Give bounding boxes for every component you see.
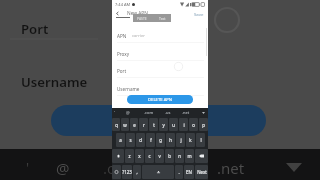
button[interactable]: r — [139, 118, 148, 131]
staticText: Port — [21, 20, 49, 38]
staticText: Text — [159, 16, 166, 21]
staticText: j — [180, 137, 182, 143]
button[interactable]: u — [169, 118, 178, 131]
staticText: carrier — [132, 33, 145, 39]
staticText: k — [189, 137, 192, 143]
button[interactable]: t — [149, 118, 158, 131]
staticText: , — [136, 169, 138, 175]
staticText: Username — [117, 86, 140, 92]
staticText: q — [115, 122, 118, 128]
button[interactable]: Next — [195, 165, 208, 179]
staticText: i — [183, 122, 185, 128]
button[interactable]: Emoji — [112, 165, 121, 179]
button[interactable]: EN — [184, 165, 194, 179]
staticText: Proxy — [117, 51, 130, 57]
staticText: d — [139, 137, 142, 143]
staticText: a — [119, 137, 122, 143]
staticText: ' — [114, 110, 115, 115]
staticText: h — [169, 137, 172, 143]
button[interactable]: c — [145, 149, 154, 163]
button[interactable]: APN — [112, 28, 208, 46]
staticText: PASTE — [137, 16, 147, 21]
button[interactable]: a — [116, 133, 125, 147]
button[interactable]: m — [185, 149, 194, 163]
button[interactable]: d — [136, 133, 145, 147]
staticText: EN — [186, 169, 192, 175]
staticText: p — [202, 122, 205, 128]
button[interactable]: h — [166, 133, 175, 147]
button[interactable]: f — [146, 133, 155, 147]
staticText: y — [162, 122, 165, 128]
button[interactable]: Username — [112, 81, 208, 99]
button[interactable]: Shift — [112, 149, 124, 163]
staticText: Username — [21, 73, 88, 91]
button[interactable]: . — [175, 165, 183, 179]
button[interactable]: Proxy — [112, 46, 208, 64]
staticText: @ — [56, 158, 70, 178]
staticText: .com — [144, 110, 154, 115]
staticText: t — [153, 122, 155, 128]
button[interactable]: Backspace — [195, 149, 208, 163]
staticText: @ — [126, 110, 130, 115]
button[interactable]: v — [155, 149, 164, 163]
staticText: g — [159, 137, 162, 143]
button[interactable]: p — [199, 118, 208, 131]
staticText: l — [200, 137, 202, 143]
button[interactable]: z — [125, 149, 134, 163]
staticText: s — [129, 137, 132, 143]
staticText: .net — [182, 110, 190, 115]
button[interactable]: ?123 — [122, 165, 132, 179]
staticText: DELETE APN — [148, 97, 173, 103]
staticText: e — [133, 122, 136, 128]
staticText: .us — [165, 110, 171, 115]
staticText: Next — [197, 169, 207, 175]
button[interactable]: i — [179, 118, 188, 131]
staticText: Save — [194, 11, 204, 17]
staticText: n — [178, 153, 181, 159]
staticText: w — [123, 122, 127, 128]
button[interactable]: Space — [142, 165, 174, 179]
staticText: ' — [26, 158, 30, 177]
staticText: c — [148, 153, 151, 159]
button[interactable]: , — [133, 165, 141, 179]
button[interactable]: Back — [114, 10, 121, 17]
button[interactable]: x — [135, 149, 144, 163]
staticText: f — [150, 137, 152, 143]
button[interactable]: q — [112, 118, 120, 131]
button[interactable]: Port — [112, 63, 208, 81]
staticText: . — [178, 169, 180, 175]
staticText: .net — [217, 158, 245, 178]
staticText: m — [187, 153, 192, 159]
button[interactable]: o — [189, 118, 198, 131]
button[interactable]: Save — [194, 11, 204, 17]
staticText: APN — [117, 33, 127, 39]
button[interactable]: y — [159, 118, 168, 131]
staticText: New APN — [127, 10, 148, 17]
button[interactable]: l — [196, 133, 205, 147]
button[interactable]: n — [175, 149, 184, 163]
staticText: u — [172, 122, 175, 128]
button[interactable]: DELETE APN — [127, 95, 193, 104]
staticText: Port — [117, 68, 127, 74]
button[interactable]: e — [130, 118, 138, 131]
staticText: 7:44 AM — [115, 2, 131, 7]
staticText: o — [192, 122, 195, 128]
staticText: z — [128, 153, 131, 159]
button[interactable]: j — [176, 133, 185, 147]
staticText: .c — [103, 158, 115, 178]
staticText: r — [143, 122, 145, 128]
button[interactable]: w — [121, 118, 129, 131]
staticText: b — [168, 153, 171, 159]
button[interactable]: s — [126, 133, 135, 147]
button[interactable]: b — [165, 149, 174, 163]
staticText: ?123 — [122, 169, 132, 175]
button[interactable]: k — [186, 133, 195, 147]
staticText: x — [138, 153, 141, 159]
button[interactable]: g — [156, 133, 165, 147]
staticText: v — [158, 153, 161, 159]
